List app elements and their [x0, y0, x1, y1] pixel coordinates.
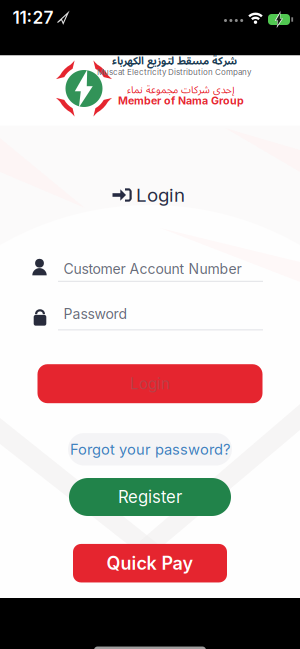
- staticText: Register: [118, 487, 182, 507]
- button[interactable]: Quick Pay: [73, 544, 227, 582]
- staticText: Login: [130, 374, 170, 393]
- staticText: Login: [136, 184, 185, 206]
- staticText: 11:27: [12, 7, 53, 28]
- staticText: شركة مسقط لتوزيع الكهرباء: [111, 50, 236, 72]
- button[interactable]: Password: [32, 303, 263, 331]
- staticText: Customer Account Number: [63, 260, 241, 277]
- staticText: Forgot your password?: [70, 440, 230, 458]
- staticText: Muscat Electricity Distribution Company: [97, 67, 251, 77]
- staticText: Password: [63, 305, 127, 322]
- button[interactable]: Register: [69, 478, 231, 516]
- button[interactable]: Customer Account Number: [32, 256, 263, 284]
- staticText: Member of Nama Group: [118, 94, 244, 107]
- button[interactable]: Login: [37, 364, 262, 403]
- staticText: إحدى شركات مجموعة نماء: [126, 79, 233, 100]
- staticText: Quick Pay: [106, 552, 193, 574]
- button[interactable]: Forgot your password?: [68, 433, 232, 466]
